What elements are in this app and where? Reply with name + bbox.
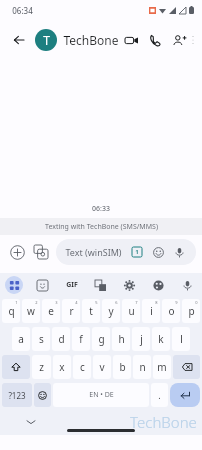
- button[interactable]: z: [32, 355, 51, 379]
- button[interactable]: TechBone: [63, 32, 119, 48]
- staticText: z: [39, 360, 44, 374]
- staticText: 8: [155, 300, 158, 305]
- staticText: ?123: [8, 390, 26, 401]
- staticText: 06:34: [12, 5, 33, 16]
- button[interactable]: h: [112, 327, 130, 351]
- button[interactable]: Add attachment: [6, 241, 28, 263]
- button[interactable]: p: [182, 299, 200, 323]
- staticText: q: [8, 304, 15, 318]
- button[interactable]: Settings: [115, 273, 144, 297]
- staticText: 9: [175, 300, 178, 305]
- button[interactable]: Emoji: [150, 244, 166, 260]
- button[interactable]: m: [153, 355, 171, 379]
- button[interactable]: r: [62, 299, 80, 323]
- button[interactable]: o: [162, 299, 180, 323]
- button[interactable]: Voice input: [173, 273, 202, 297]
- staticText: 7: [135, 300, 138, 305]
- button[interactable]: Text (winSIM): [56, 239, 196, 265]
- button[interactable]: e: [42, 299, 60, 323]
- staticText: m: [157, 360, 167, 374]
- staticText: 5: [95, 300, 98, 305]
- staticText: Texting with TechBone (SMS/MMS): [45, 222, 158, 232]
- staticText: n: [139, 360, 146, 374]
- staticText: 2: [35, 300, 38, 305]
- button[interactable]: l: [172, 327, 190, 351]
- staticText: b: [119, 360, 126, 374]
- staticText: 4: [75, 300, 78, 305]
- button[interactable]: Stickers: [28, 273, 57, 297]
- staticText: o: [168, 304, 175, 318]
- button[interactable]: u: [122, 299, 140, 323]
- button[interactable]: f: [72, 327, 90, 351]
- staticText: u: [128, 304, 135, 318]
- button[interactable]: Space EN DE: [53, 383, 149, 407]
- staticText: p: [188, 304, 195, 318]
- button[interactable]: ?123: [2, 383, 32, 407]
- button[interactable]: v: [93, 355, 111, 379]
- button[interactable]: x: [53, 355, 71, 379]
- staticText: i: [150, 304, 153, 318]
- button[interactable]: Backspace: [173, 355, 200, 379]
- button[interactable]: Camera: [30, 241, 52, 263]
- staticText: a: [18, 332, 24, 346]
- staticText: c: [80, 360, 85, 374]
- button[interactable]: Call: [143, 28, 167, 52]
- button[interactable]: More options: [191, 30, 195, 50]
- staticText: h: [118, 332, 125, 346]
- staticText: GIF: [66, 280, 78, 290]
- staticText: t: [89, 304, 93, 318]
- staticText: TechBone: [130, 412, 197, 432]
- button[interactable]: j: [132, 327, 150, 351]
- button[interactable]: Enter: [170, 383, 200, 407]
- button[interactable]: b: [113, 355, 131, 379]
- button[interactable]: Period: [151, 383, 168, 407]
- staticText: EN • DE: [89, 390, 114, 400]
- button[interactable]: t: [82, 299, 100, 323]
- staticText: w: [27, 304, 35, 318]
- staticText: s: [39, 332, 44, 346]
- button[interactable]: i: [142, 299, 160, 323]
- button[interactable]: Add contact: [167, 28, 191, 52]
- button[interactable]: d: [52, 327, 70, 351]
- button[interactable]: SIM 1: [129, 244, 145, 260]
- staticText: 0: [195, 300, 198, 305]
- button[interactable]: GIF: [57, 273, 86, 297]
- button[interactable]: n: [133, 355, 151, 379]
- button[interactable]: Toolbar: [0, 273, 28, 297]
- staticText: Text (winSIM): [65, 246, 122, 258]
- button[interactable]: Contact avatar: [35, 29, 57, 51]
- button[interactable]: Hide keyboard: [24, 415, 38, 429]
- button[interactable]: k: [152, 327, 170, 351]
- button[interactable]: g: [92, 327, 110, 351]
- button[interactable]: s: [32, 327, 50, 351]
- button[interactable]: w: [22, 299, 40, 323]
- button[interactable]: Voice message: [171, 244, 187, 260]
- staticText: 1: [15, 300, 18, 305]
- staticText: v: [99, 360, 105, 374]
- staticText: e: [48, 304, 54, 318]
- button[interactable]: Translate: [86, 273, 115, 297]
- staticText: y: [108, 304, 114, 318]
- staticText: T: [43, 32, 50, 48]
- button[interactable]: Back: [7, 28, 31, 52]
- button[interactable]: Video call: [119, 28, 143, 52]
- staticText: k: [158, 332, 164, 346]
- staticText: 1: [135, 248, 139, 256]
- button[interactable]: Shift: [2, 355, 30, 379]
- button[interactable]: a: [12, 327, 30, 351]
- staticText: 3: [55, 300, 58, 305]
- staticText: r: [69, 304, 74, 318]
- button[interactable]: Emoji key: [34, 383, 51, 407]
- button[interactable]: Themes: [144, 273, 173, 297]
- button[interactable]: y: [102, 299, 120, 323]
- staticText: .: [158, 389, 161, 401]
- button[interactable]: q: [2, 299, 20, 323]
- staticText: j: [140, 332, 143, 346]
- staticText: f: [79, 332, 83, 346]
- staticText: 06:33: [92, 204, 110, 214]
- staticText: x: [59, 360, 65, 374]
- button[interactable]: c: [73, 355, 91, 379]
- staticText: g: [98, 332, 105, 346]
- staticText: 6: [115, 300, 118, 305]
- staticText: l: [180, 332, 183, 346]
